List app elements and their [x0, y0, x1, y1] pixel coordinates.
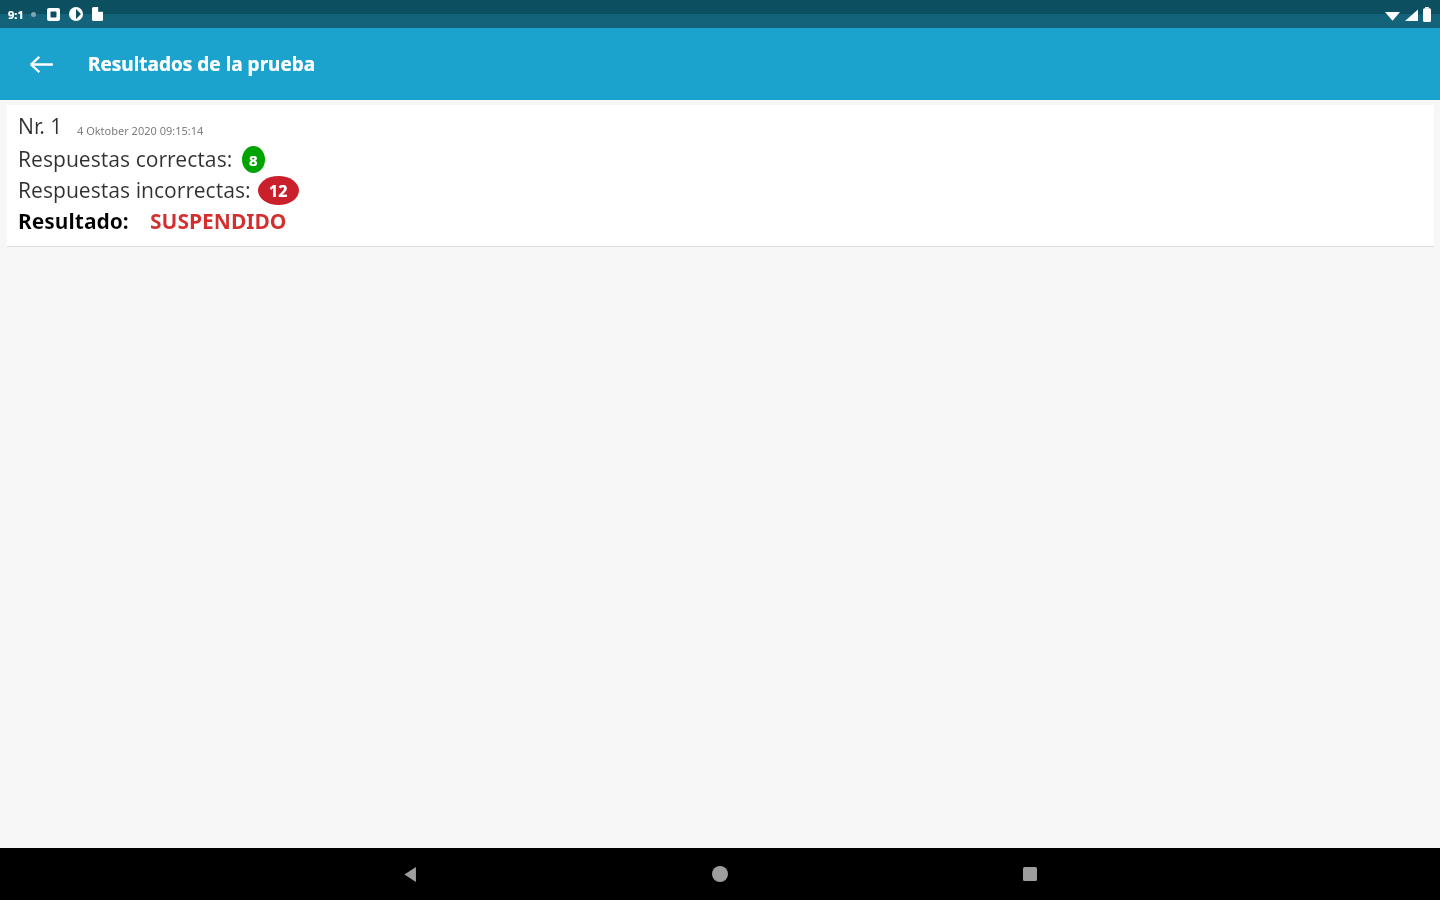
staticText: Respuestas incorrectas: [18, 176, 251, 205]
staticText: Resultados de la prueba [88, 51, 316, 77]
staticText: SUSPENDIDO [150, 207, 287, 236]
staticText: 8 [249, 150, 258, 170]
staticText: 12 [269, 180, 288, 202]
staticText: Resultado: [18, 207, 129, 236]
staticText: 9:1 [8, 7, 24, 22]
staticText: Nr. 1 [18, 112, 63, 141]
button[interactable]: Nr. 1 [7, 105, 1434, 247]
button[interactable]: Back [17, 40, 65, 88]
staticText: 4 Oktober 2020 09:15:14 [77, 123, 204, 138]
button[interactable]: Back [382, 848, 438, 900]
staticText: Respuestas correctas: [18, 145, 233, 174]
button[interactable]: Recent apps [1002, 848, 1058, 900]
button[interactable]: Home [692, 848, 748, 900]
